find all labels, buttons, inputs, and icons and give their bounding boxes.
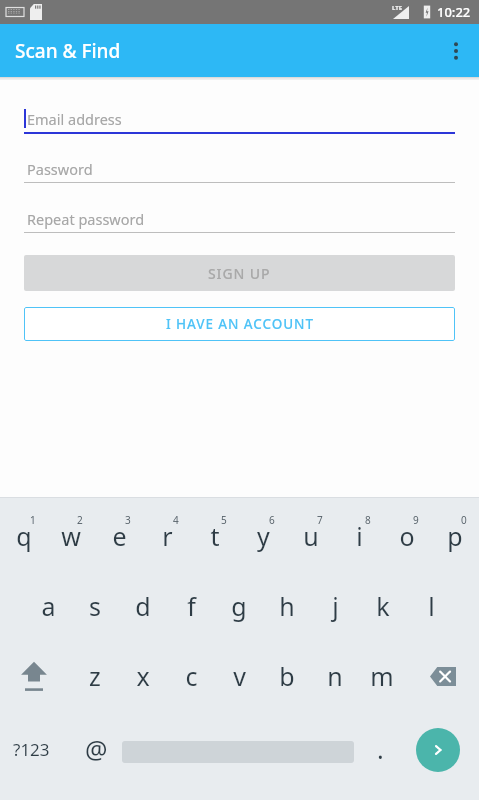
button[interactable]: f [167,582,215,630]
staticText: t [210,519,220,553]
staticText: 8 [365,513,371,527]
staticText: q [16,519,32,553]
button[interactable]: Enter [416,728,460,772]
button[interactable]: z [71,652,119,700]
staticText: c [185,659,198,693]
staticText: s [89,589,101,623]
button[interactable]: I HAVE AN ACCOUNT [24,307,455,341]
button[interactable]: Shift [10,652,58,700]
button[interactable]: e [95,512,143,560]
staticText: ?123 [13,738,50,761]
button[interactable]: m [358,652,406,700]
staticText: . [377,732,384,766]
button[interactable]: q [0,512,48,560]
button[interactable]: i [335,512,383,560]
button[interactable]: u [287,512,335,560]
staticText: x [136,659,150,693]
button[interactable]: l [407,582,455,630]
staticText: 3 [125,513,131,527]
staticText: m [370,659,394,693]
button[interactable]: SIGN UP [24,255,455,291]
staticText: a [41,589,56,623]
staticText: j [332,589,339,623]
staticText: d [135,589,151,623]
button[interactable]: . [360,725,400,773]
staticText: Repeat password [27,209,145,229]
staticText: w [61,519,81,553]
button[interactable]: y [239,512,287,560]
staticText: 4 [173,513,179,527]
staticText: e [112,519,127,553]
staticText: p [447,519,463,553]
staticText: SIGN UP [208,264,271,283]
button[interactable]: h [263,582,311,630]
button[interactable]: Password [24,155,455,182]
button[interactable]: o [383,512,431,560]
staticText: 5 [221,513,227,527]
staticText: g [231,589,247,623]
button[interactable]: x [119,652,167,700]
button[interactable]: p [431,512,479,560]
staticText: r [162,519,173,553]
staticText: 9 [413,513,419,527]
button[interactable]: More options [433,28,479,74]
staticText: @ [85,732,108,766]
button[interactable]: v [215,652,263,700]
button[interactable]: b [263,652,311,700]
staticText: v [233,659,246,693]
staticText: 10:22 [437,3,471,21]
staticText: o [399,519,415,553]
staticText: i [356,519,363,553]
staticText: 2 [77,513,83,527]
staticText: b [279,659,295,693]
button[interactable]: c [167,652,215,700]
button[interactable]: g [215,582,263,630]
button[interactable]: j [311,582,359,630]
staticText: 7 [317,513,323,527]
staticText: Password [27,159,93,179]
button[interactable]: r [143,512,191,560]
staticText: n [327,659,343,693]
button[interactable]: Backspace [419,652,467,700]
staticText: Email address [27,109,122,129]
staticText: y [257,519,270,553]
button[interactable]: t [191,512,239,560]
staticText: 1 [30,513,36,527]
staticText: l [428,589,435,623]
staticText: 6 [269,513,275,527]
button[interactable]: Email address [24,105,455,132]
staticText: Scan & Find [15,38,121,64]
staticText: z [89,659,101,693]
staticText: I HAVE AN ACCOUNT [166,315,314,333]
staticText: k [376,589,390,623]
staticText: 0 [461,513,467,527]
button[interactable]: ?123 [0,725,62,773]
button[interactable]: w [47,512,95,560]
button[interactable]: d [119,582,167,630]
button[interactable]: a [24,582,72,630]
staticText: h [279,589,295,623]
staticText: u [303,519,319,553]
button[interactable]: s [71,582,119,630]
button[interactable]: @ [72,725,120,773]
button[interactable]: Repeat password [24,205,455,232]
staticText: LTE [392,4,403,12]
button[interactable]: n [311,652,359,700]
staticText: f [187,589,196,623]
button[interactable]: k [359,582,407,630]
